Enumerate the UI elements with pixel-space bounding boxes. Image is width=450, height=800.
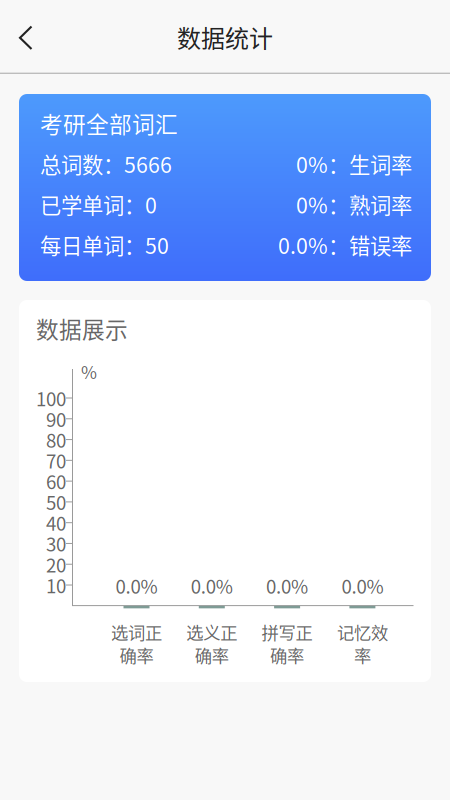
staticText: 考研全部词汇	[40, 107, 178, 139]
staticText: 50	[46, 488, 66, 515]
staticText: 0%：熟词率	[296, 189, 412, 220]
staticText: 80	[46, 426, 66, 453]
staticText: 20	[46, 551, 66, 578]
staticText: 10	[46, 571, 66, 598]
staticText: 选义正	[186, 619, 237, 645]
staticText: 拼写正	[262, 619, 313, 645]
staticText: 确率	[195, 642, 229, 668]
staticText: 数据展示	[36, 312, 128, 345]
staticText: 数据统计	[177, 20, 273, 54]
button[interactable]: Back	[0, 0, 50, 74]
staticText: 90	[46, 405, 66, 432]
staticText: 70	[46, 447, 66, 474]
staticText: 0.0%	[191, 572, 233, 599]
staticText: 确率	[119, 642, 153, 668]
staticText: 率	[354, 642, 371, 668]
staticText: 60	[46, 468, 66, 495]
staticText: 0.0%	[266, 572, 308, 599]
staticText: 每日单词：50	[40, 229, 169, 260]
staticText: 已学单词：0	[40, 189, 157, 220]
staticText: 确率	[270, 642, 304, 668]
staticText: 0.0%	[341, 572, 383, 599]
staticText: 记忆效	[337, 619, 388, 645]
staticText: %	[81, 359, 97, 384]
staticText: 0.0%：错误率	[278, 229, 412, 260]
staticText: 总词数：5666	[40, 148, 172, 179]
staticText: 选词正	[111, 619, 162, 645]
staticText: 40	[46, 509, 66, 536]
staticText: 0%：生词率	[296, 148, 412, 179]
staticText: 100	[36, 384, 66, 411]
staticText: 0.0%	[115, 572, 157, 599]
staticText: 30	[46, 530, 66, 557]
